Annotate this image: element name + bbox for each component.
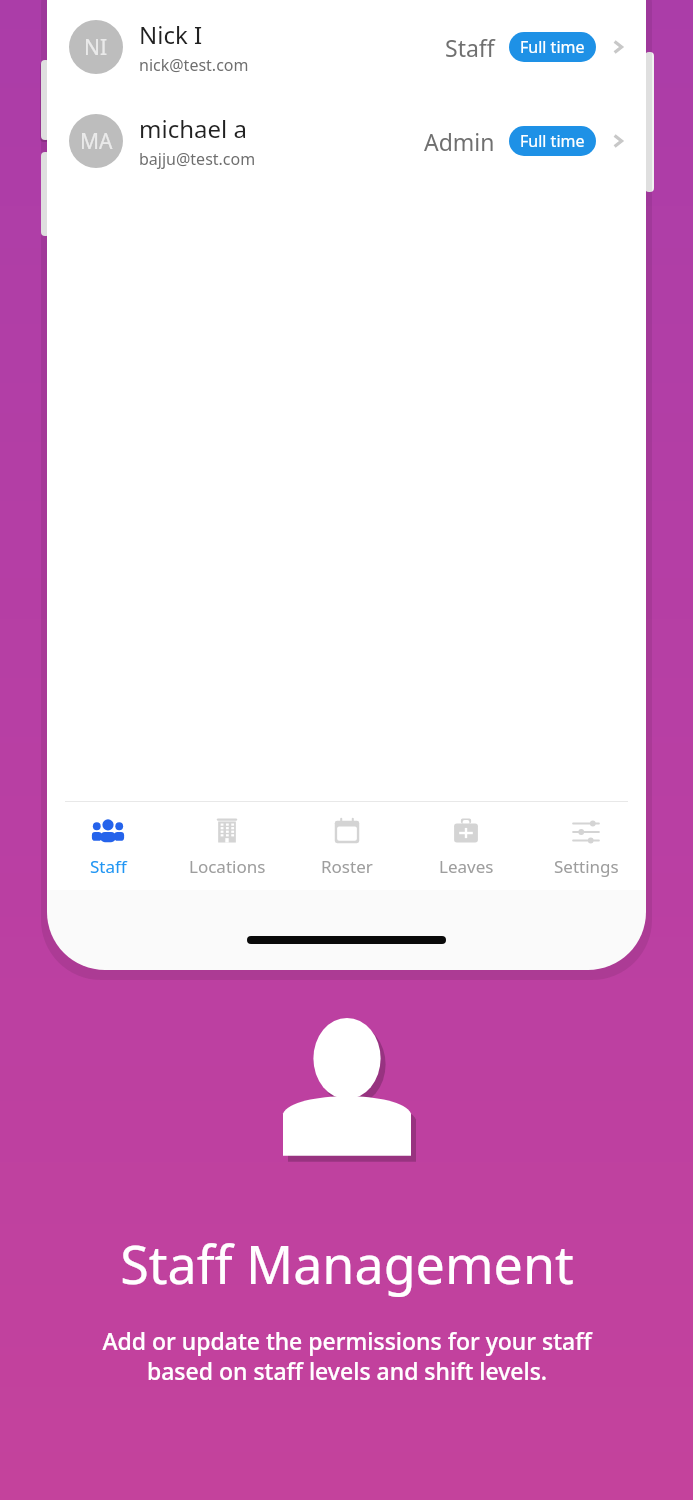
button[interactable]: Locations <box>168 802 286 890</box>
staticText: Add or update the permissions for your s… <box>102 1325 592 1387</box>
staticText: NI <box>84 33 108 62</box>
staticText: Settings <box>554 855 619 878</box>
staticText: Admin <box>424 126 495 157</box>
button[interactable]: MA <box>47 94 646 188</box>
button[interactable]: NI <box>47 0 646 94</box>
staticText: Leaves <box>439 855 494 878</box>
staticText: michael a <box>139 112 247 145</box>
staticText: Full time <box>520 130 585 152</box>
button[interactable]: Leaves <box>407 802 525 890</box>
staticText: nick@test.com <box>139 54 249 76</box>
staticText: Staff Management <box>120 1228 574 1299</box>
staticText: Locations <box>189 855 266 878</box>
staticText: Staff <box>90 855 127 878</box>
button[interactable]: Roster <box>288 802 406 890</box>
button[interactable]: Staff <box>49 802 167 890</box>
button[interactable]: Settings <box>527 802 645 890</box>
staticText: Staff <box>445 32 495 63</box>
other: Open details <box>608 37 628 57</box>
staticText: Nick I <box>139 18 203 51</box>
other: Staff person <box>267 1015 427 1160</box>
staticText: Full time <box>520 36 585 58</box>
other: Open details <box>608 131 628 151</box>
staticText: MA <box>80 127 113 156</box>
staticText: Roster <box>321 855 373 878</box>
staticText: bajju@test.com <box>139 148 256 170</box>
